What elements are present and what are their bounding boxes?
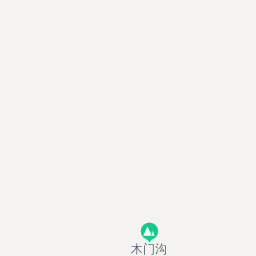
button[interactable]: 木门沟 map marker	[109, 218, 189, 254]
staticText: 木门沟	[109, 241, 189, 256]
